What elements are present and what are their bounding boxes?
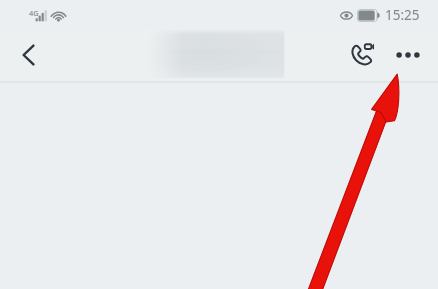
- staticText: 15:25: [385, 6, 420, 24]
- staticText: 4G: [29, 8, 39, 18]
- button[interactable]: Back: [9, 35, 49, 75]
- button[interactable]: More options: [389, 36, 427, 74]
- button[interactable]: Video call: [343, 36, 381, 74]
